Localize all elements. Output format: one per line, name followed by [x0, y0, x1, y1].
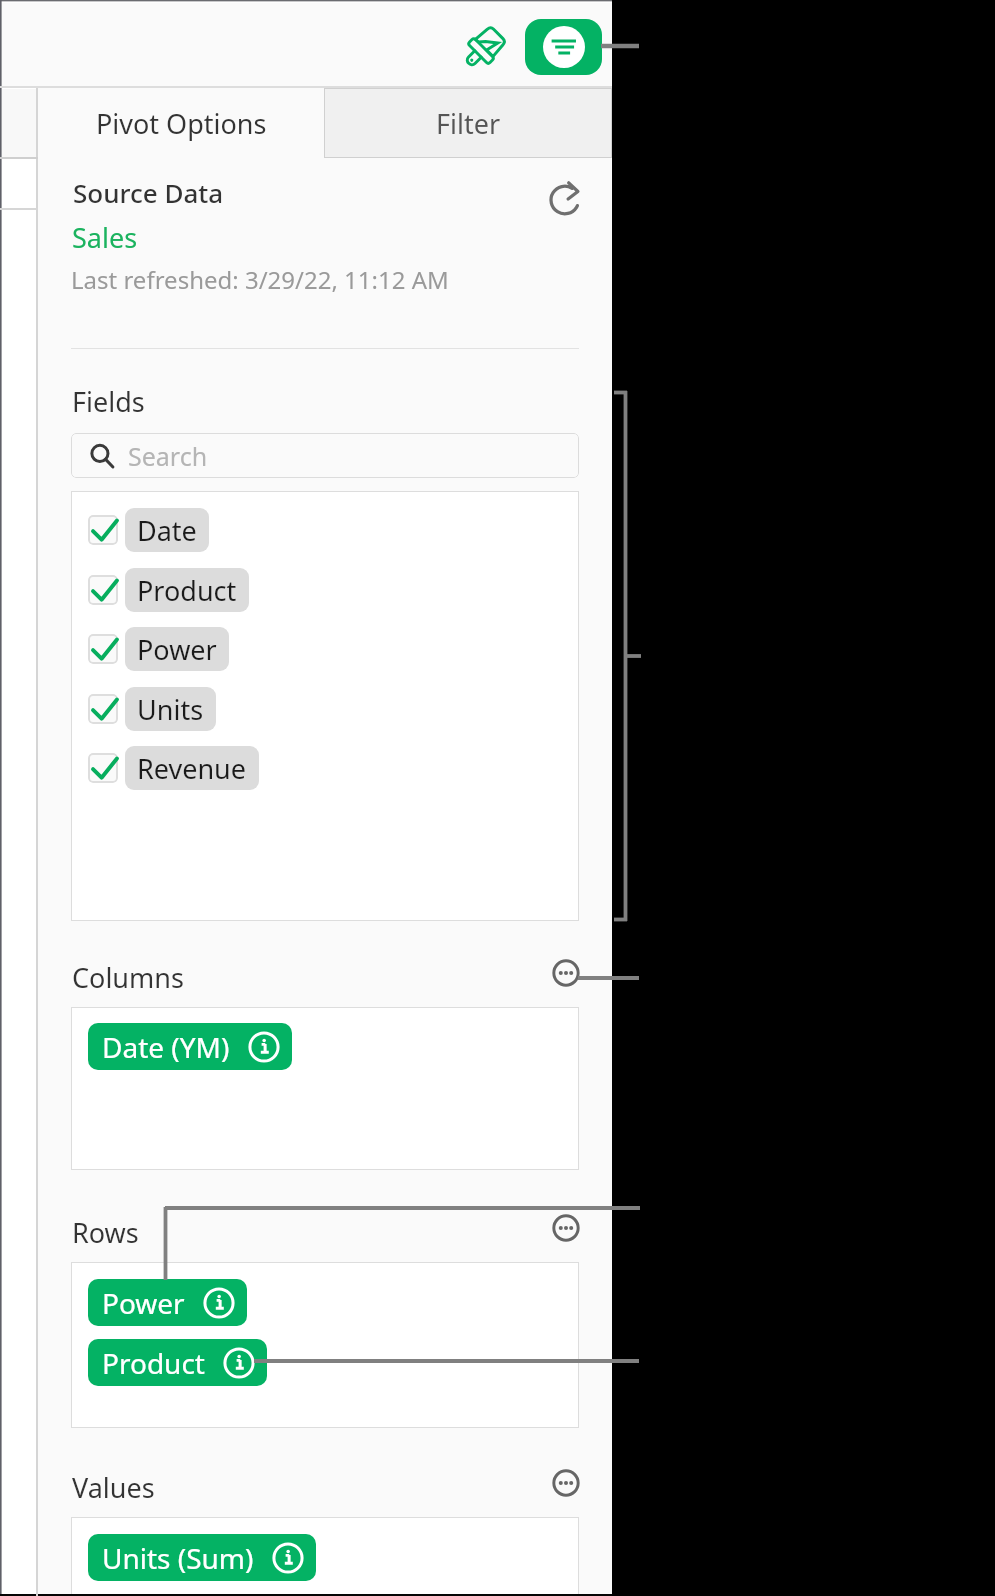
- button[interactable]: Organize: [525, 19, 602, 75]
- button[interactable]: Units (Sum): [88, 1534, 316, 1581]
- staticText: Columns: [72, 959, 184, 996]
- staticText: Fields: [72, 383, 145, 420]
- button[interactable]: Refresh: [538, 168, 594, 224]
- staticText: Search: [128, 439, 208, 473]
- staticText: Units (Sum): [102, 1539, 254, 1577]
- staticText: Date: [137, 512, 197, 549]
- staticText: Last refreshed: 3/29/22, 11:12 AM: [71, 263, 449, 296]
- button[interactable]: Format: [453, 20, 511, 78]
- staticText: Pivot Options: [96, 105, 267, 142]
- button[interactable]: Search: [71, 433, 579, 478]
- staticText: Date (YM): [102, 1028, 230, 1066]
- staticText: Power: [137, 631, 217, 668]
- staticText: Source Data: [73, 175, 224, 210]
- staticText: Power: [102, 1284, 185, 1322]
- button[interactable]: Rows options: [541, 1203, 591, 1253]
- button[interactable]: Revenue: [88, 746, 259, 790]
- button[interactable]: Columns options: [541, 948, 591, 998]
- staticText: Product: [137, 572, 237, 609]
- button[interactable]: Product: [88, 1339, 267, 1386]
- button[interactable]: Date (YM): [88, 1023, 292, 1070]
- staticText: Filter: [436, 105, 501, 142]
- button[interactable]: Pivot Options: [38, 88, 324, 158]
- button[interactable]: Sales: [72, 219, 138, 256]
- button[interactable]: Power: [88, 1279, 247, 1326]
- staticText: Revenue: [137, 750, 247, 787]
- button[interactable]: Units: [88, 687, 216, 731]
- button[interactable]: Power: [88, 627, 229, 671]
- staticText: Values: [72, 1469, 155, 1506]
- staticText: Rows: [72, 1214, 139, 1251]
- button[interactable]: Values options: [541, 1458, 591, 1508]
- button[interactable]: Date: [88, 508, 209, 552]
- button[interactable]: Product: [88, 568, 249, 612]
- staticText: Units: [137, 691, 204, 728]
- staticText: Product: [102, 1344, 205, 1382]
- button[interactable]: Filter: [324, 88, 612, 158]
